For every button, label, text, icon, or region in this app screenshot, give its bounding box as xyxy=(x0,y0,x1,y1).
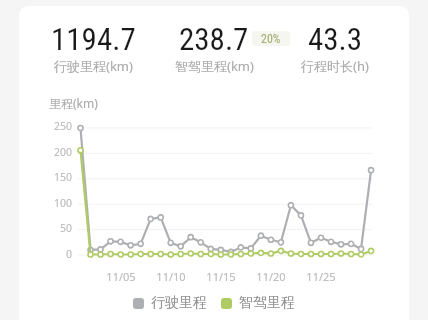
staticText: 200 xyxy=(40,145,72,159)
staticText: 20% xyxy=(261,32,281,46)
staticText: 11/10 xyxy=(151,269,191,284)
staticText: 行驶里程(km) xyxy=(54,57,133,75)
staticText: 250 xyxy=(40,119,72,133)
staticText: 150 xyxy=(40,170,72,184)
staticText: 11/20 xyxy=(251,269,291,284)
button[interactable]: 238.7 xyxy=(114,21,314,75)
staticText: 238.7 xyxy=(179,21,249,57)
staticText: 11/25 xyxy=(301,269,341,284)
staticText: 50 xyxy=(40,221,72,235)
staticText: 智驾里程 xyxy=(239,294,295,312)
staticText: 11/15 xyxy=(201,269,241,284)
staticText: 行程时长(h) xyxy=(301,57,369,75)
button[interactable]: 智驾里程 xyxy=(221,294,295,312)
staticText: 0 xyxy=(40,247,72,261)
staticText: 1194.7 xyxy=(51,21,136,57)
staticText: 11/05 xyxy=(101,269,141,284)
staticText: 100 xyxy=(40,196,72,210)
button[interactable]: 行驶里程 xyxy=(133,294,207,312)
button[interactable]: 1194.7 xyxy=(0,21,193,75)
staticText: 里程(km) xyxy=(49,95,98,111)
staticText: 行驶里程 xyxy=(151,294,207,312)
staticText: 43.3 xyxy=(308,21,363,57)
staticText: 智驾里程(km) xyxy=(175,57,254,75)
button[interactable]: 43.3 xyxy=(235,21,428,75)
